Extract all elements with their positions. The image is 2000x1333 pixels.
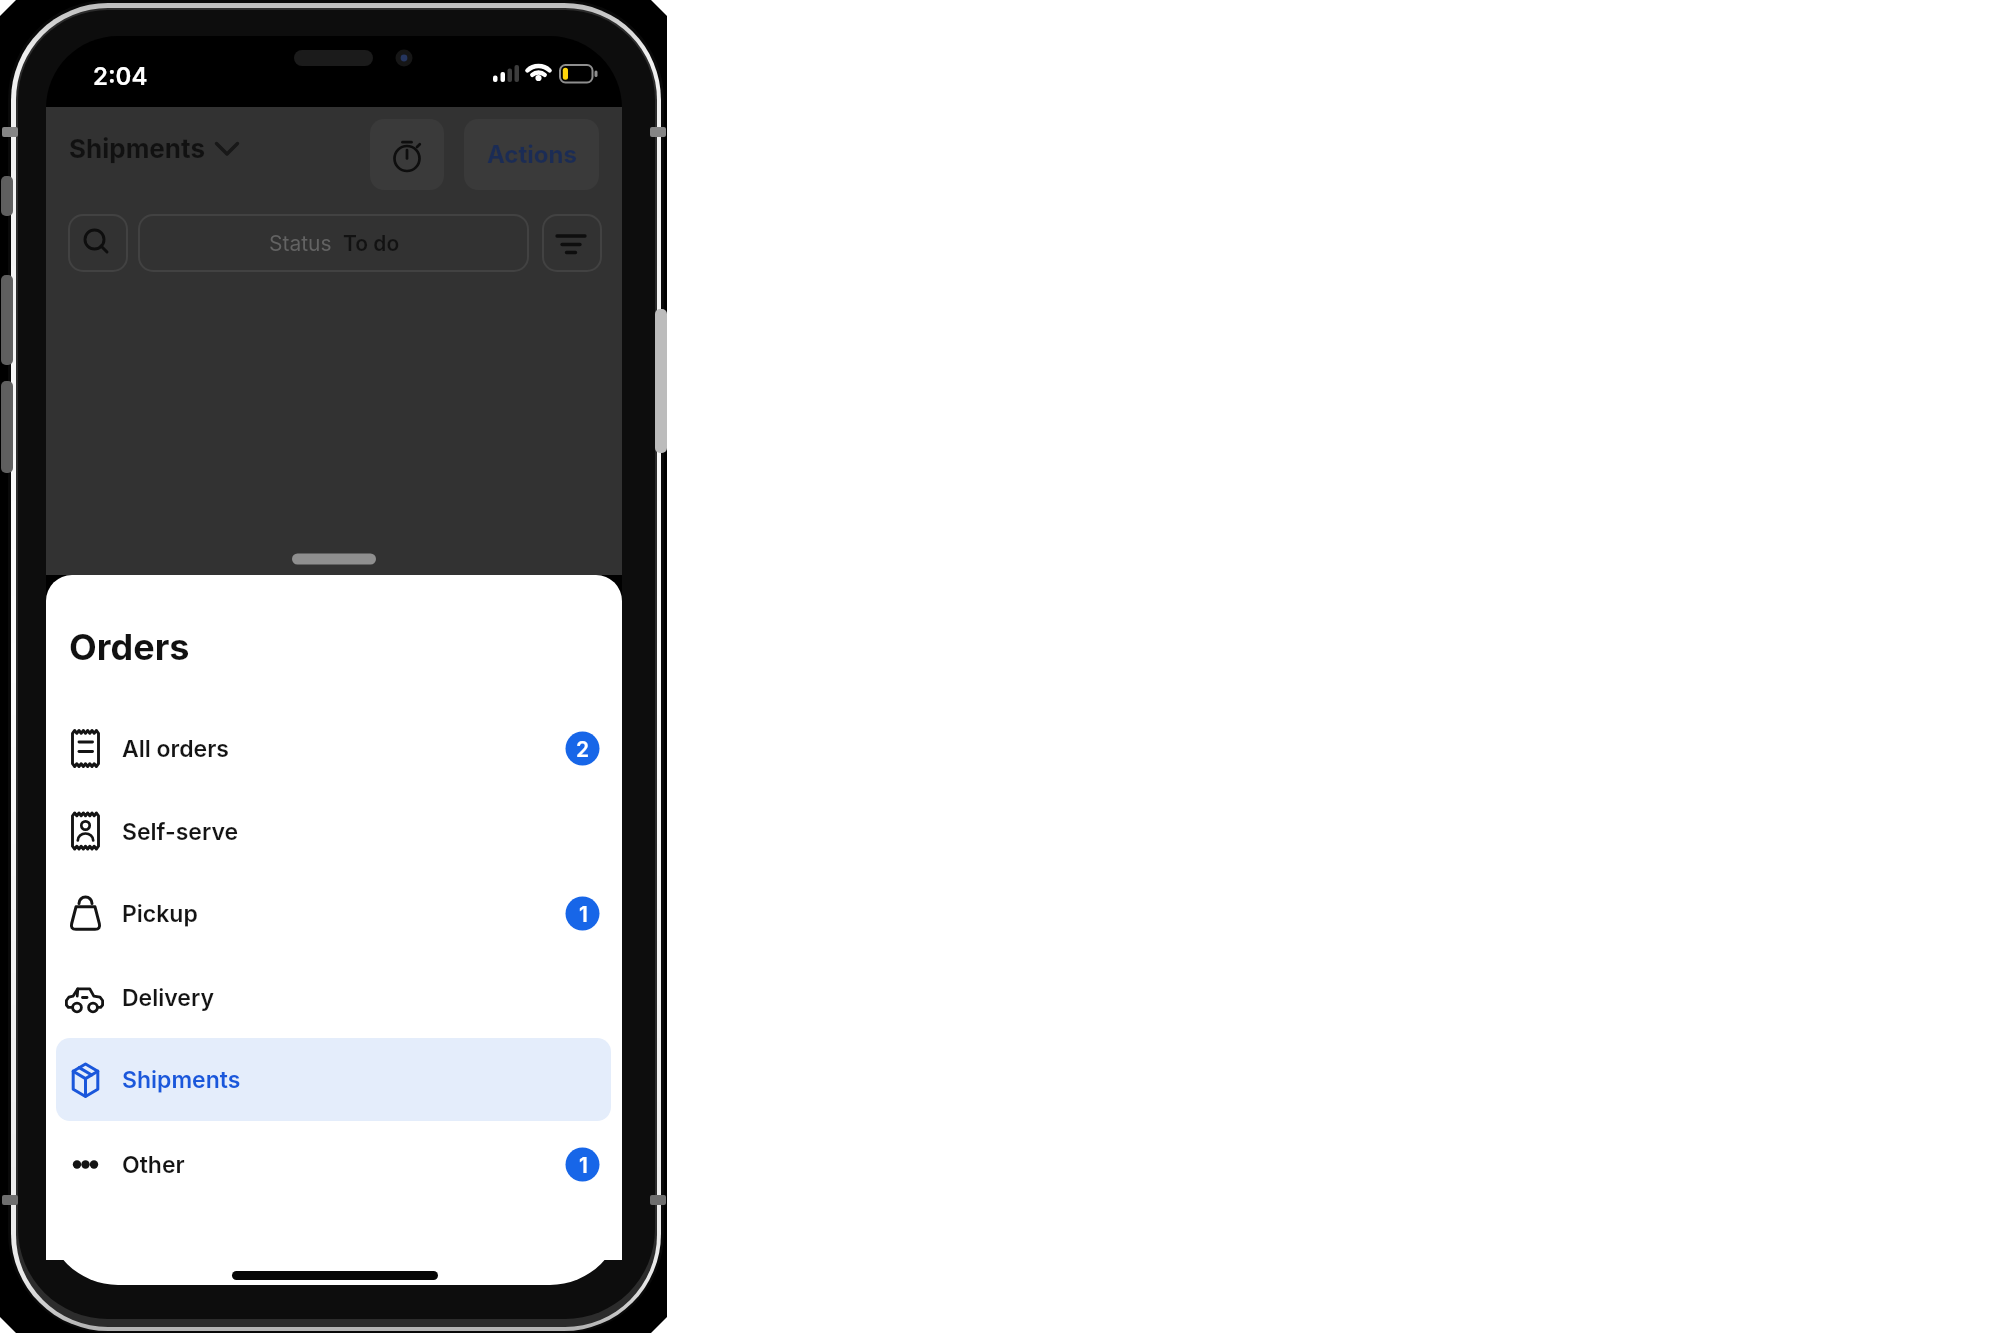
staticText: Other (122, 1151, 185, 1179)
staticText: Pickup (122, 900, 198, 928)
staticText: All orders (122, 735, 229, 763)
button[interactable]: Pickup (46, 872, 622, 955)
staticText: 1 (579, 1153, 588, 1178)
button[interactable]: All orders (46, 707, 622, 790)
button[interactable]: Shipments (69, 128, 249, 168)
staticText: To do (343, 231, 400, 256)
staticText: Orders (69, 625, 190, 669)
staticText: Delivery (122, 984, 214, 1012)
button[interactable]: Actions (464, 119, 599, 190)
button[interactable] (69, 215, 127, 271)
button[interactable] (543, 215, 601, 271)
staticText: 1 (579, 902, 588, 927)
staticText: 2:04 (93, 62, 148, 91)
button[interactable]: Delivery (46, 956, 622, 1039)
staticText: Actions (487, 140, 577, 169)
button[interactable]: Other (46, 1123, 622, 1206)
button[interactable]: Self-serve (46, 790, 622, 873)
staticText: Status (269, 231, 332, 256)
staticText: Shipments (122, 1066, 241, 1094)
staticText: Self-serve (122, 818, 239, 846)
button[interactable] (139, 215, 528, 271)
staticText: 2 (576, 737, 590, 762)
button[interactable] (370, 119, 444, 190)
staticText: Shipments (69, 133, 205, 164)
button[interactable]: Shipments (46, 1038, 622, 1121)
